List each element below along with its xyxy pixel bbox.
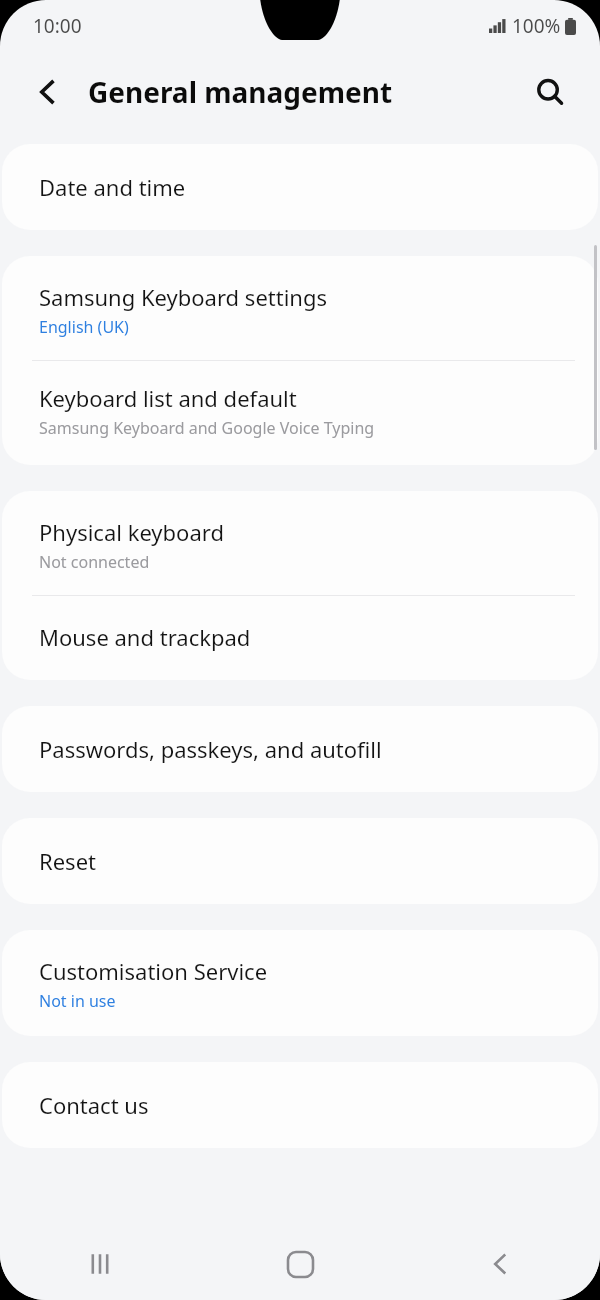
- staticText: Date and time: [39, 172, 186, 202]
- staticText: 100%: [512, 13, 561, 39]
- staticText: Passwords, passkeys, and autofill: [39, 734, 382, 764]
- staticText: Not in use: [39, 990, 116, 1012]
- staticText: Not connected: [39, 551, 150, 573]
- button[interactable]: Contact us: [2, 1062, 598, 1148]
- button[interactable]: Passwords, passkeys, and autofill: [2, 706, 598, 792]
- staticText: Physical keyboard: [39, 517, 224, 547]
- button[interactable]: Back: [22, 66, 74, 118]
- staticText: Samsung Keyboard and Google Voice Typing: [39, 417, 375, 439]
- staticText: Customisation Service: [39, 956, 268, 986]
- button[interactable]: Search: [524, 66, 576, 118]
- staticText: Samsung Keyboard settings: [39, 282, 328, 312]
- button[interactable]: Recents: [74, 1238, 126, 1290]
- button[interactable]: Mouse and trackpad: [2, 596, 598, 680]
- button[interactable]: Home: [274, 1238, 326, 1290]
- staticText: 10:00: [33, 13, 82, 39]
- button[interactable]: Physical keyboard: [2, 491, 598, 595]
- button[interactable]: Customisation Service: [2, 930, 598, 1036]
- staticText: General management: [88, 73, 393, 111]
- button[interactable]: Keyboard list and default: [2, 361, 598, 465]
- button[interactable]: Back: [474, 1238, 526, 1290]
- button[interactable]: Samsung Keyboard settings: [2, 256, 598, 360]
- button[interactable]: Reset: [2, 818, 598, 904]
- staticText: Keyboard list and default: [39, 383, 297, 413]
- staticText: Reset: [39, 846, 96, 876]
- button[interactable]: Date and time: [2, 144, 598, 230]
- staticText: Contact us: [39, 1090, 149, 1120]
- staticText: Mouse and trackpad: [39, 622, 251, 652]
- staticText: English (UK): [39, 316, 129, 338]
